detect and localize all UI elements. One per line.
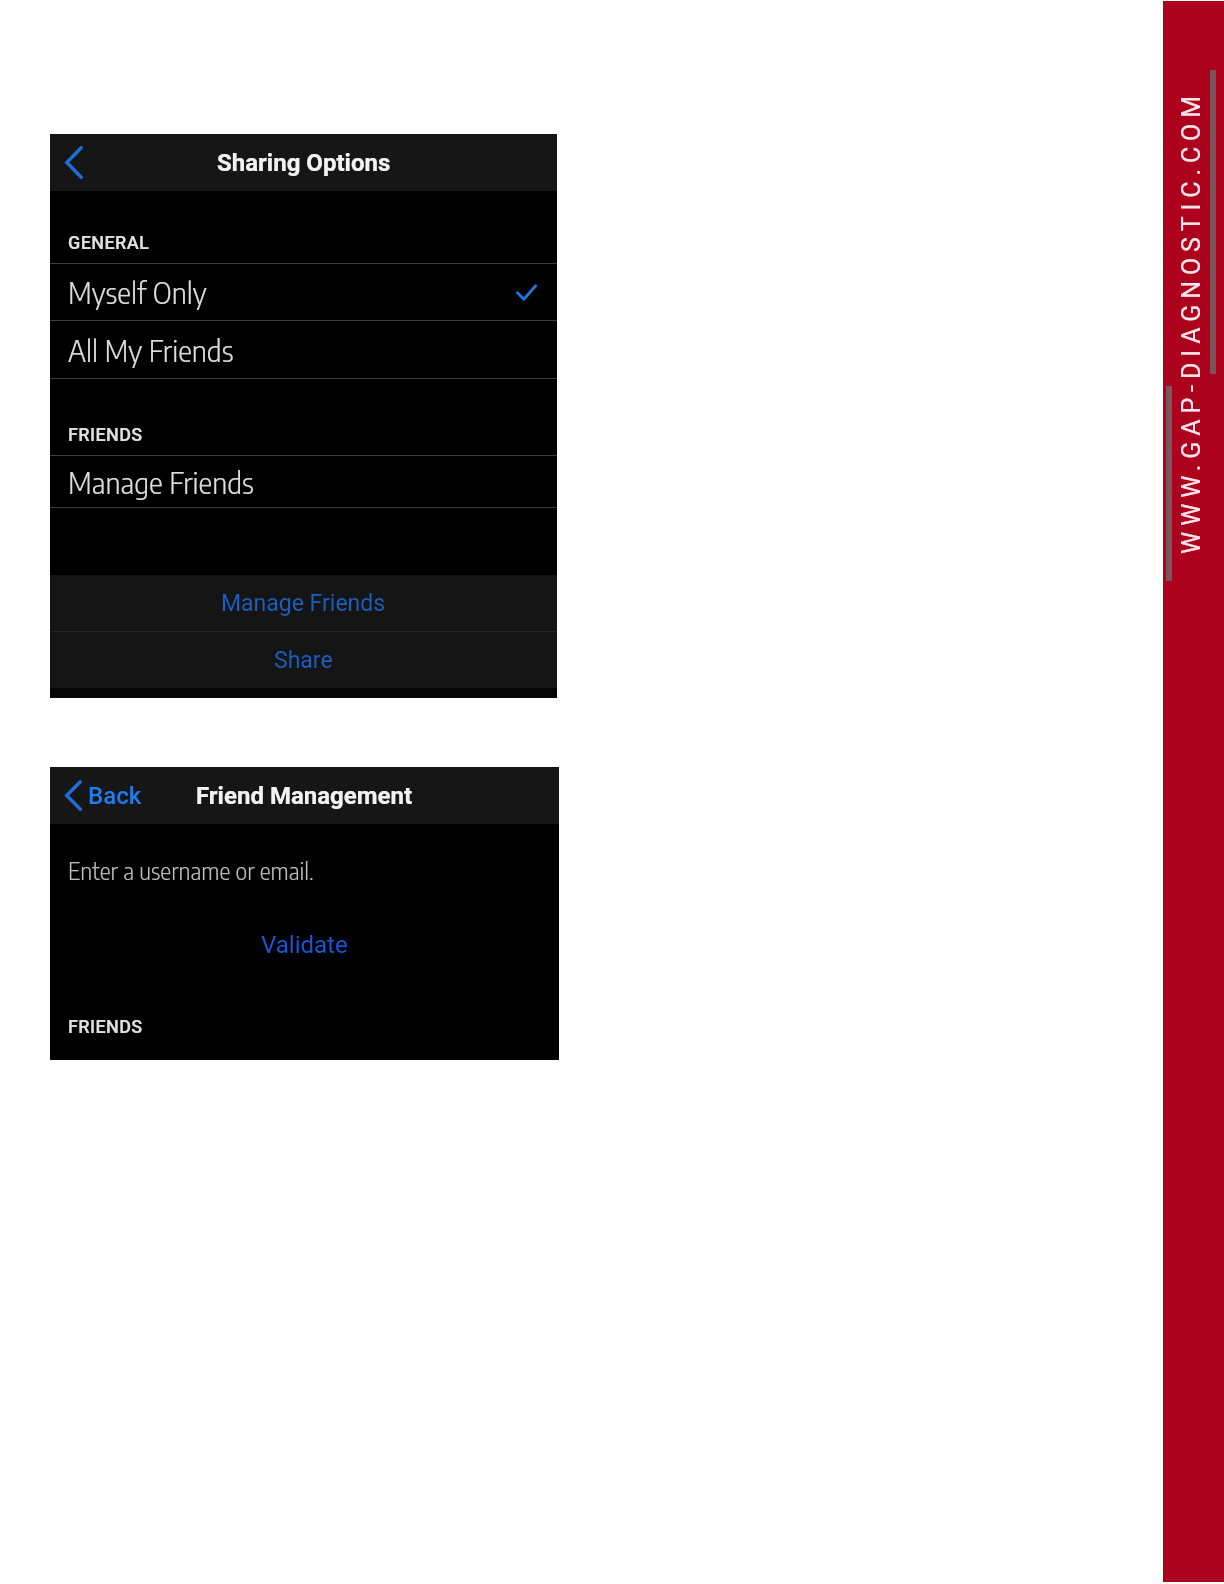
- staticText: Friend Management: [196, 782, 413, 810]
- staticText: Myself Only: [68, 274, 207, 310]
- button[interactable]: Manage Friends: [50, 456, 557, 507]
- staticText: Validate: [261, 931, 348, 959]
- staticText: Manage Friends: [221, 590, 386, 617]
- staticText: WWW.GAP-DIAGNOSTIC.COM: [1177, 90, 1206, 554]
- button[interactable]: Validate: [50, 928, 559, 962]
- staticText: Back: [88, 782, 142, 810]
- staticText: Share: [274, 647, 333, 674]
- staticText: Manage Friends: [68, 464, 254, 500]
- button[interactable]: Myself Only: [50, 264, 557, 320]
- button[interactable]: All My Friends: [50, 321, 557, 378]
- staticText: Sharing Options: [217, 149, 391, 177]
- button[interactable]: Back: [46, 134, 102, 191]
- button[interactable]: Manage Friends: [50, 575, 557, 631]
- staticText: FRIENDS: [68, 424, 143, 445]
- staticText: FRIENDS: [68, 1016, 143, 1037]
- staticText: GENERAL: [68, 232, 150, 253]
- staticText: Enter a username or email.: [68, 856, 314, 885]
- button[interactable]: Share: [50, 632, 557, 688]
- staticText: All My Friends: [68, 332, 234, 368]
- button[interactable]: Back: [50, 767, 152, 824]
